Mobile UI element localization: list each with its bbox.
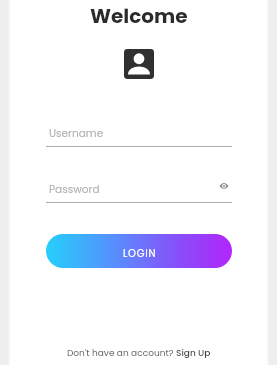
staticText: Sign Up [176,347,211,360]
staticText: Username [49,126,104,141]
staticText: Welcome [90,2,188,30]
staticText: Password [49,182,100,197]
button[interactable]: LOGIN [46,234,232,268]
button[interactable]: Sign Up [176,347,211,360]
button[interactable]: Show password [216,178,232,194]
staticText: LOGIN [123,246,157,260]
staticText: Don't have an account? [67,347,176,360]
